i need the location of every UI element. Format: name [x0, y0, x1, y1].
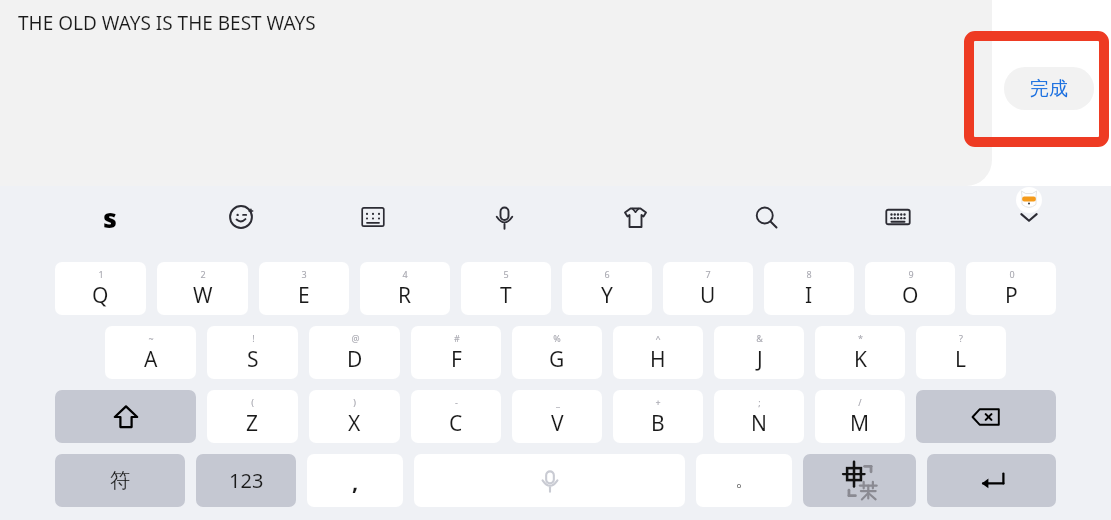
button[interactable]: @ — [309, 326, 400, 379]
staticText: - — [455, 396, 458, 408]
button[interactable]: ( — [207, 390, 298, 443]
staticText: F — [451, 345, 462, 374]
staticText: % — [553, 332, 561, 344]
button[interactable]: 符 — [55, 454, 185, 507]
staticText: I — [805, 281, 813, 310]
staticText: C — [449, 409, 463, 438]
staticText: 8 — [806, 268, 812, 280]
button[interactable]: 1 — [55, 262, 146, 315]
staticText: ; — [758, 396, 761, 408]
button[interactable]: Emoji — [219, 195, 263, 239]
button[interactable]: ) — [309, 390, 400, 443]
button[interactable]: 4 — [360, 262, 450, 315]
staticText: 5 — [503, 268, 509, 280]
staticText: ) — [353, 396, 356, 408]
staticText: , — [352, 466, 359, 496]
staticText: _ — [556, 396, 560, 408]
button[interactable]: Space — [414, 454, 685, 507]
button[interactable]: Enter — [927, 454, 1056, 507]
staticText: 0 — [1009, 268, 1015, 280]
staticText: X — [348, 409, 361, 438]
button[interactable]: 2 — [157, 262, 248, 315]
staticText: 1 — [98, 268, 104, 280]
button[interactable]: / — [815, 390, 905, 443]
button[interactable]: 9 — [865, 262, 955, 315]
staticText: * — [858, 332, 863, 344]
staticText: T — [500, 281, 512, 310]
button[interactable]: 6 — [562, 262, 652, 315]
button[interactable]: , — [307, 454, 403, 507]
button[interactable]: Keyboard layout — [876, 195, 920, 239]
button[interactable]: 0 — [966, 262, 1056, 315]
staticText: 4 — [402, 268, 408, 280]
button[interactable]: 123 — [196, 454, 296, 507]
staticText: Q — [92, 281, 109, 310]
button[interactable]: - — [411, 390, 501, 443]
staticText: Z — [246, 409, 259, 438]
button[interactable]: Search — [744, 195, 788, 239]
staticText: V — [551, 409, 564, 438]
staticText: D — [347, 345, 363, 374]
staticText: K — [854, 345, 867, 374]
staticText: E — [298, 281, 310, 310]
button[interactable]: Voice input — [482, 195, 526, 239]
button[interactable]: Switch Chinese English — [803, 454, 916, 507]
staticText: L — [955, 345, 967, 374]
staticText: S — [247, 345, 259, 374]
button[interactable]: % — [512, 326, 602, 379]
button[interactable]: ; — [714, 390, 804, 443]
staticText: ( — [251, 396, 254, 408]
button[interactable]: * — [815, 326, 905, 379]
button[interactable]: + — [613, 390, 703, 443]
staticText: A — [144, 345, 158, 374]
button[interactable]: 。 — [696, 454, 792, 507]
staticText: B — [651, 409, 665, 438]
staticText: G — [549, 345, 565, 374]
button[interactable]: ! — [207, 326, 298, 379]
staticText: 7 — [705, 268, 711, 280]
staticText: / — [858, 396, 862, 408]
staticText: # — [454, 332, 460, 344]
staticText: 符 — [110, 468, 130, 493]
button[interactable]: & — [714, 326, 804, 379]
staticText: 123 — [229, 467, 264, 494]
staticText: 9 — [908, 268, 914, 280]
staticText: U — [700, 281, 716, 310]
staticText: 2 — [200, 268, 206, 280]
button[interactable]: 完成 — [1004, 67, 1094, 110]
staticText: J — [757, 345, 763, 374]
button[interactable]: Backspace — [916, 390, 1056, 443]
staticText: 。 — [735, 469, 753, 492]
button[interactable]: THE OLD WAYS IS THE BEST WAYS — [0, 0, 992, 186]
staticText: P — [1005, 281, 1018, 310]
button[interactable]: 8 — [764, 262, 854, 315]
button[interactable]: Sogou — [88, 195, 132, 239]
button[interactable]: _ — [512, 390, 602, 443]
staticText: ~ — [148, 332, 154, 344]
button[interactable] — [55, 390, 196, 443]
button[interactable]: ? — [916, 326, 1006, 379]
staticText: & — [756, 332, 763, 344]
staticText: @ — [351, 332, 360, 344]
staticText: R — [398, 281, 412, 310]
staticText: ! — [252, 332, 255, 344]
button[interactable]: ~ — [105, 326, 196, 379]
button[interactable]: 5 — [461, 262, 551, 315]
button[interactable]: 3 — [259, 262, 349, 315]
staticText: Y — [601, 281, 613, 310]
staticText: 3 — [301, 268, 307, 280]
staticText: M — [850, 409, 870, 438]
staticText: s — [103, 199, 117, 236]
staticText: ^ — [655, 332, 661, 344]
button[interactable]: Themes — [613, 195, 657, 239]
button[interactable]: Keypad — [351, 195, 395, 239]
button[interactable]: 7 — [663, 262, 753, 315]
staticText: + — [655, 396, 661, 408]
staticText: 完成 — [1030, 77, 1068, 101]
button[interactable]: # — [411, 326, 501, 379]
button[interactable]: Hide keyboard — [1007, 195, 1051, 239]
button[interactable]: Mascot — [1016, 187, 1042, 213]
staticText: THE OLD WAYS IS THE BEST WAYS — [18, 10, 316, 36]
staticText: N — [751, 409, 767, 438]
button[interactable]: ^ — [613, 326, 703, 379]
